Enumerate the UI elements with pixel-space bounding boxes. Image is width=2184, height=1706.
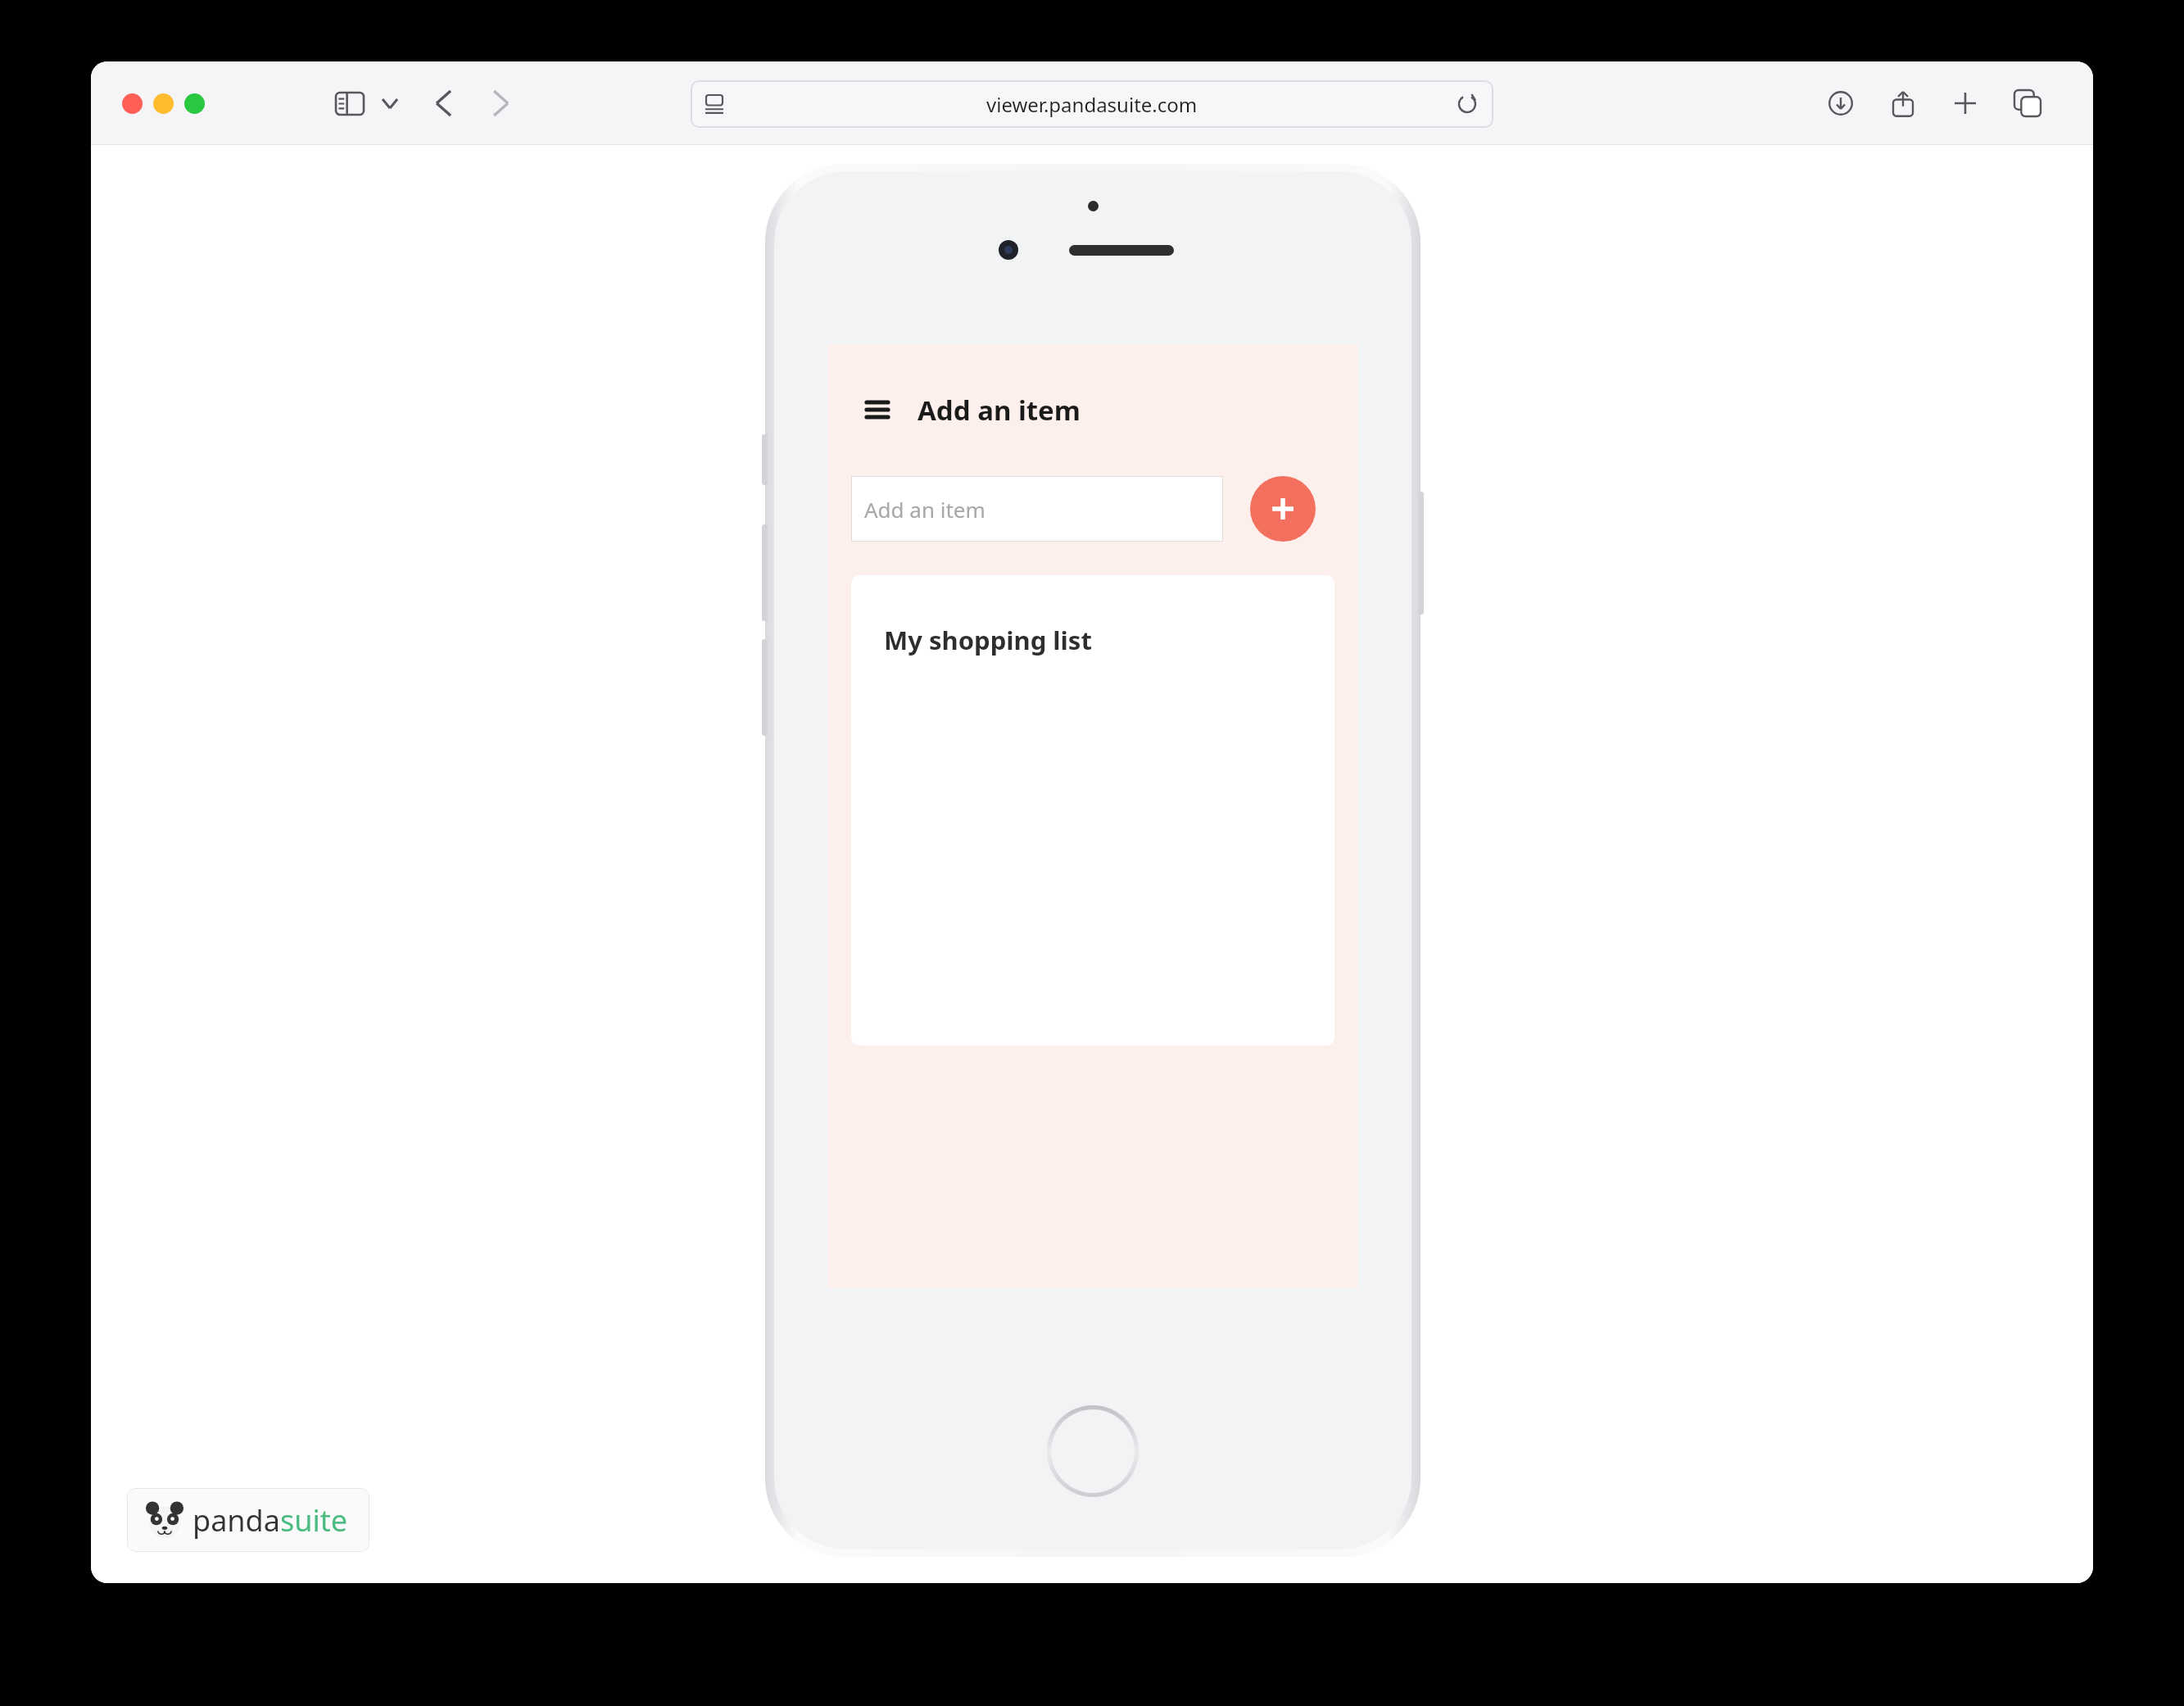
button[interactable]: Menu — [859, 391, 896, 429]
staticText: suite — [280, 1500, 348, 1540]
button[interactable] — [122, 93, 143, 114]
staticText: Add an item — [918, 392, 1081, 429]
button[interactable]: Show Tabs — [2005, 80, 2050, 126]
button[interactable]: Forward — [479, 82, 522, 125]
other: Reload — [1457, 94, 1477, 114]
button[interactable] — [184, 93, 205, 114]
button[interactable]: New Tab — [1942, 80, 1988, 126]
button[interactable]: Back — [422, 82, 464, 125]
button[interactable]: Sidebar — [329, 82, 371, 125]
button[interactable]: Share — [1880, 80, 1926, 126]
button[interactable]: panda — [127, 1488, 369, 1552]
staticText: Add an item — [864, 495, 986, 524]
button[interactable]: Add an item — [851, 476, 1223, 542]
button[interactable]: viewer.pandasuite.com — [691, 80, 1493, 128]
button[interactable]: Downloads — [1818, 80, 1864, 126]
staticText: My shopping list — [884, 623, 1092, 657]
staticText: panda — [193, 1500, 280, 1540]
button[interactable] — [153, 93, 174, 114]
button[interactable]: Sidebar options — [376, 89, 404, 117]
button[interactable]: My shopping list — [851, 575, 1334, 1046]
staticText: viewer.pandasuite.com — [986, 91, 1198, 118]
button[interactable]: Add — [1250, 476, 1316, 542]
button[interactable]: Home — [1047, 1405, 1139, 1497]
